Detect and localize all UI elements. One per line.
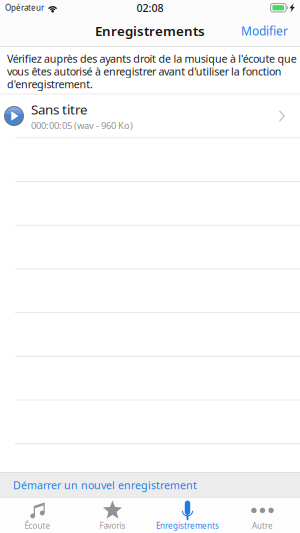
- button[interactable]: Écoute: [0, 498, 75, 533]
- staticText: Sans titre: [31, 100, 88, 118]
- staticText: Favoris: [99, 520, 125, 531]
- button[interactable]: Modifier: [241, 17, 300, 45]
- staticText: Autre: [252, 520, 273, 531]
- staticText: Démarrer un nouvel enregistrement: [13, 478, 197, 492]
- staticText: Opérateur: [5, 2, 44, 13]
- button[interactable]: Enregistrements: [150, 498, 225, 533]
- staticText: Enregistrements: [95, 22, 205, 40]
- staticText: vous êtes autorisé à enregistrer avant d…: [7, 64, 282, 78]
- staticText: 02:08: [136, 1, 163, 15]
- button[interactable]: Autre: [225, 498, 300, 533]
- button[interactable]: Démarrer un nouvel enregistrement: [0, 473, 300, 497]
- button[interactable]: Favoris: [75, 498, 150, 533]
- staticText: d'enregistrement.: [7, 77, 93, 91]
- staticText: 000:00:05 (wav - 960 Ko): [31, 119, 133, 132]
- staticText: Vérifiez auprès des ayants droit de la m…: [7, 51, 297, 66]
- staticText: Modifier: [241, 23, 288, 39]
- staticText: Enregistrements: [156, 520, 219, 531]
- staticText: Écoute: [24, 520, 50, 531]
- button[interactable]: Sans titre: [0, 95, 300, 138]
